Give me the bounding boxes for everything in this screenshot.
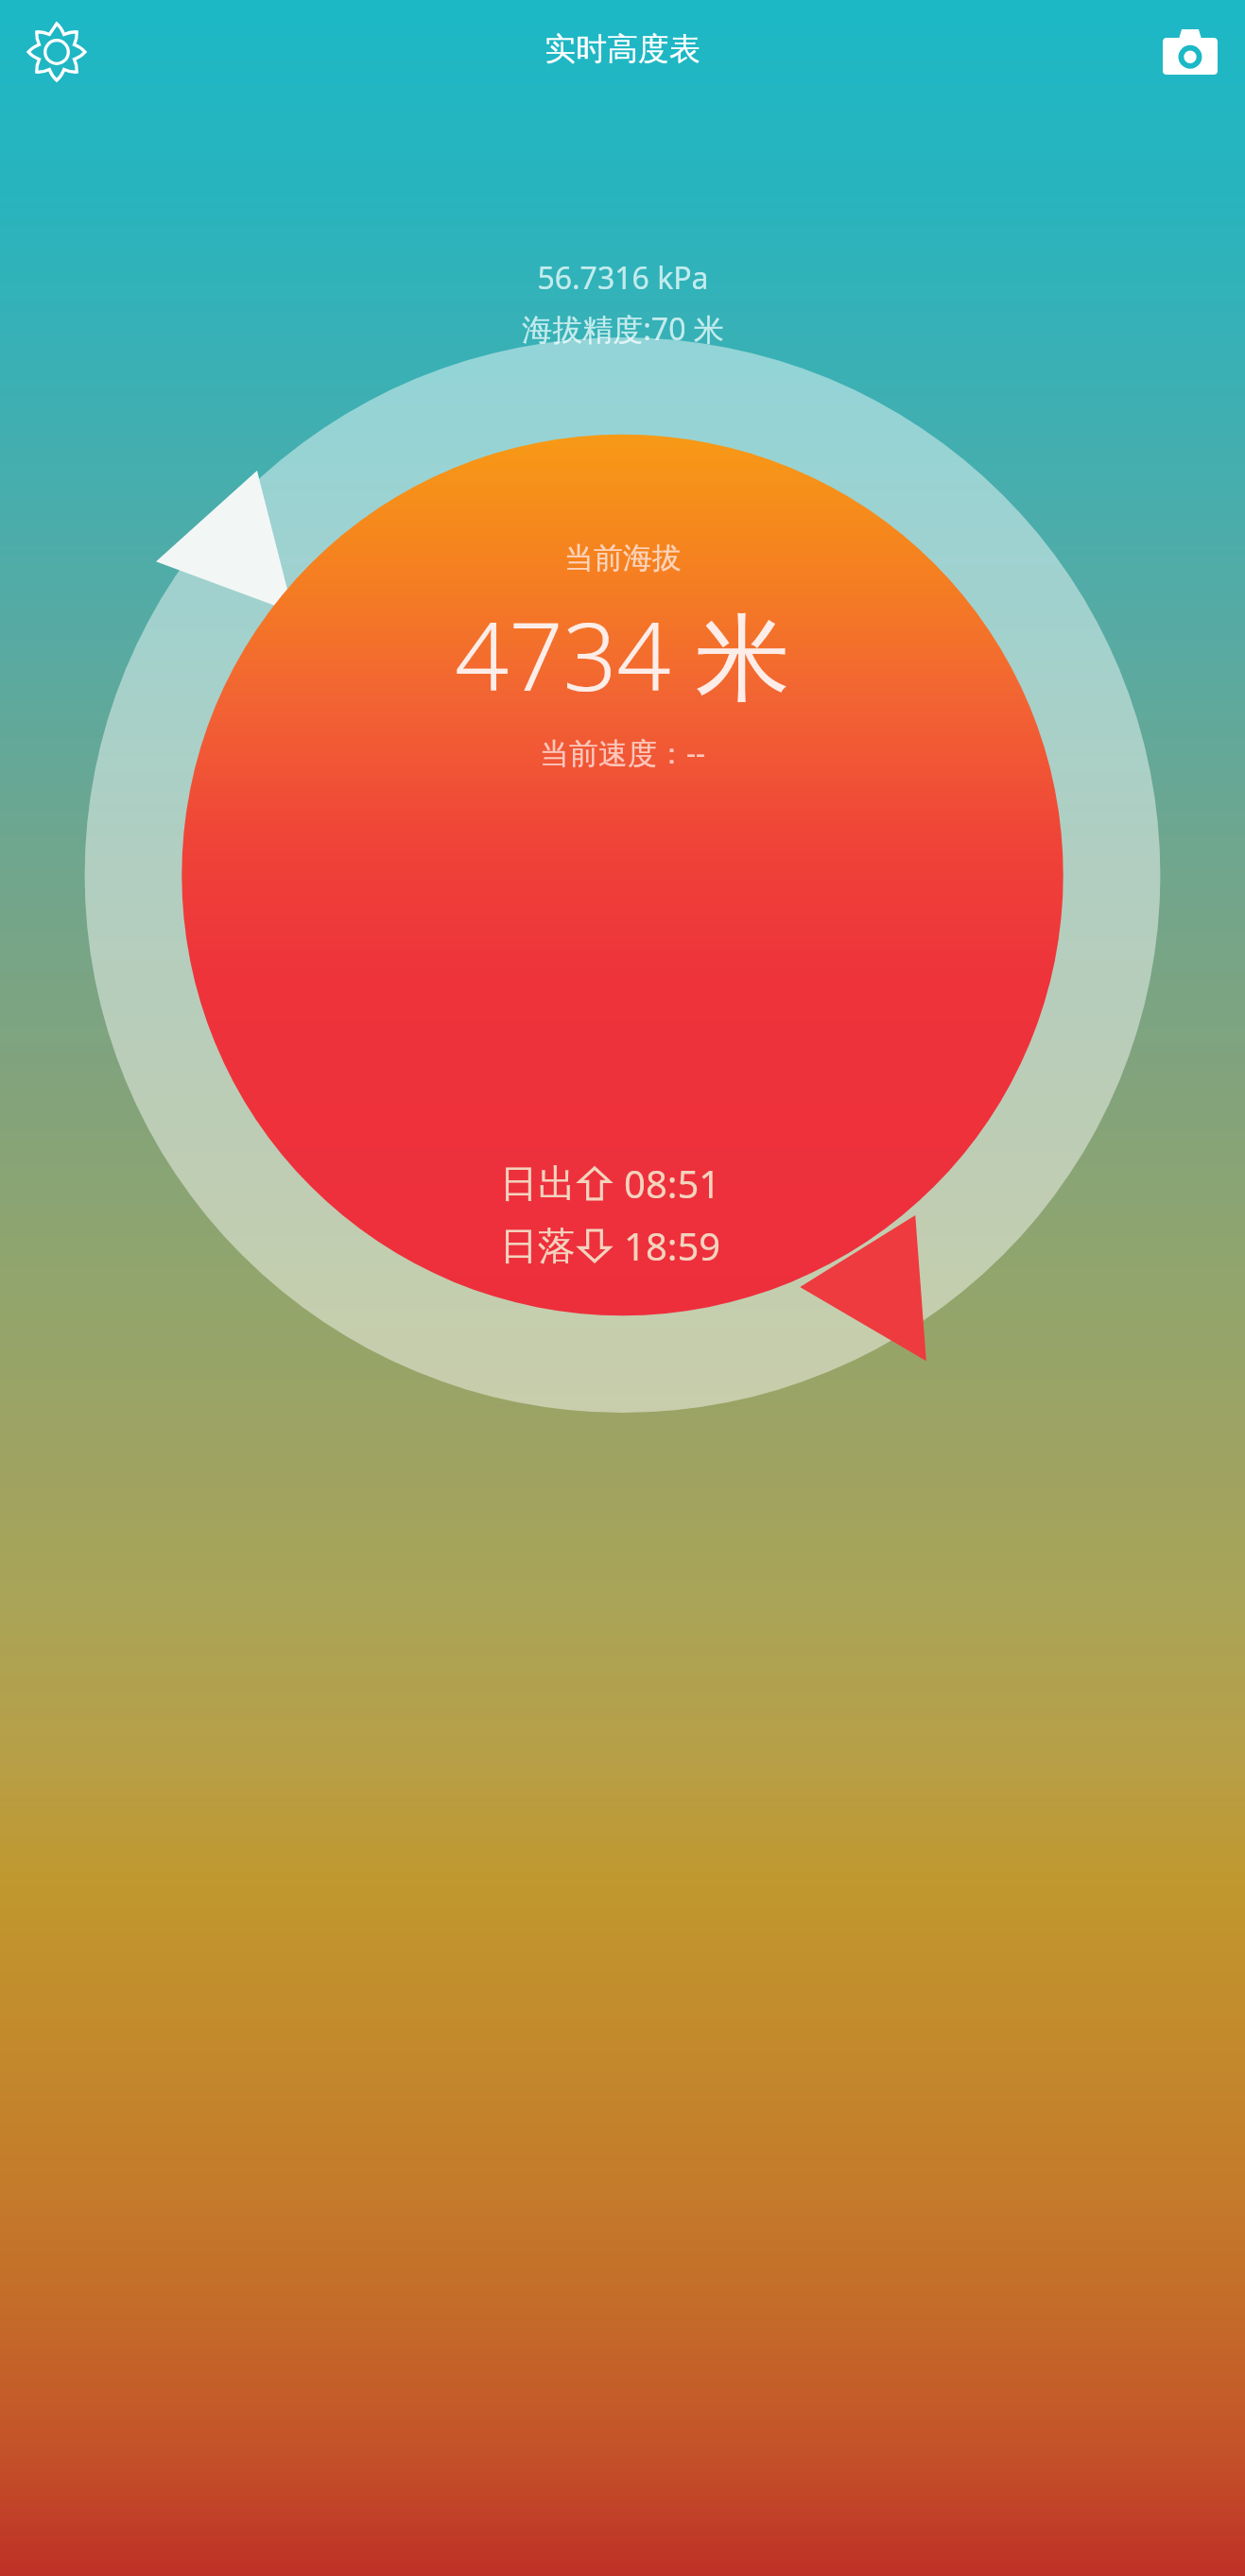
staticText: 实时高度表 xyxy=(545,29,700,69)
staticText: 当前海拔 xyxy=(564,540,682,576)
staticText: 日出 xyxy=(500,1159,576,1207)
staticText: 18:59 xyxy=(624,1220,721,1271)
staticText: 08:51 xyxy=(624,1158,721,1209)
button[interactable]: Camera xyxy=(1145,7,1236,97)
staticText: 海拔精度:70 米 xyxy=(522,308,724,350)
staticText: 4734 米 xyxy=(455,590,790,719)
staticText: 当前速度：-- xyxy=(540,732,705,772)
button[interactable]: Altitude dial xyxy=(0,334,1245,901)
staticText: 56.7316 kPa xyxy=(537,257,709,299)
button[interactable]: Settings xyxy=(11,7,102,97)
staticText: 日落 xyxy=(500,1222,576,1269)
